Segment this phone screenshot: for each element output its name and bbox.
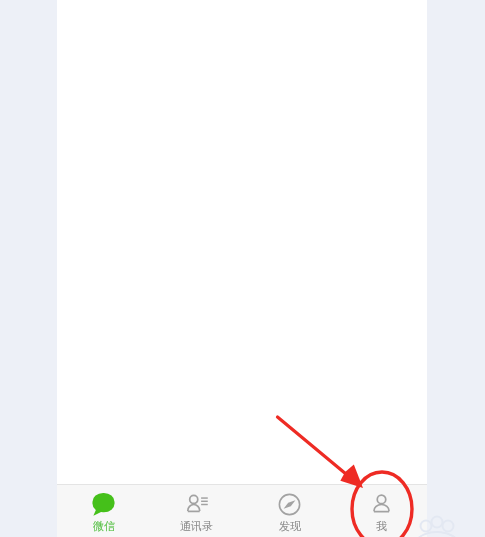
button[interactable]: 我 xyxy=(336,484,427,537)
button[interactable]: 发现 xyxy=(243,484,336,537)
other: 我 xyxy=(370,493,393,516)
staticText: 我 xyxy=(376,519,387,533)
staticText: 微信 xyxy=(93,519,115,533)
other: 通讯录 xyxy=(185,493,208,516)
staticText: 发现 xyxy=(279,519,301,533)
other: 发现 xyxy=(278,493,301,516)
button[interactable]: 通讯录 xyxy=(150,484,243,537)
button[interactable]: 微信 xyxy=(57,484,150,537)
staticText: 通讯录 xyxy=(180,519,213,533)
other: 微信 xyxy=(92,493,115,516)
